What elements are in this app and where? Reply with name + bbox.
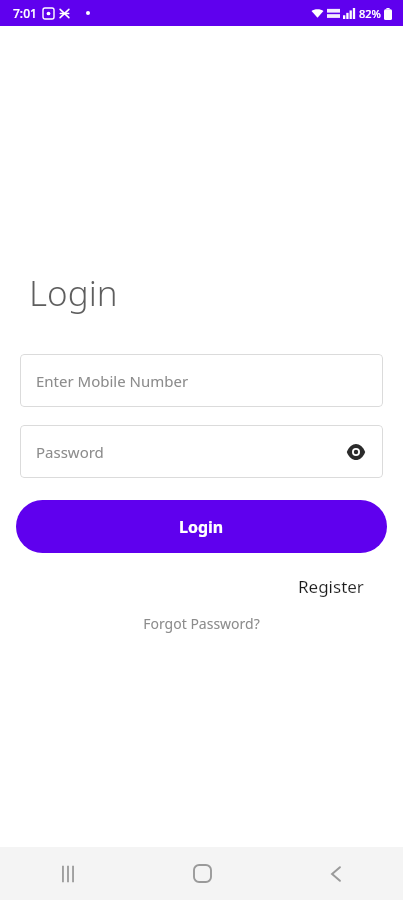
button[interactable]: Register: [295, 572, 367, 601]
button[interactable]: Login: [16, 500, 387, 553]
staticText: Forgot Password?: [143, 614, 260, 633]
staticText: Register: [298, 575, 364, 598]
button[interactable]: Recent apps: [0, 847, 135, 900]
button[interactable]: Back: [269, 847, 403, 900]
button[interactable]: Home: [135, 847, 269, 900]
button[interactable]: Show password: [343, 439, 369, 465]
button[interactable]: Forgot Password?: [137, 611, 266, 636]
staticText: Enter Mobile Number: [36, 371, 189, 391]
staticText: Password: [36, 442, 104, 462]
staticText: Login: [29, 269, 118, 317]
staticText: 82%: [359, 6, 381, 21]
staticText: 7:01: [13, 5, 37, 21]
button[interactable]: Password: [20, 425, 383, 478]
button[interactable]: Enter Mobile Number: [20, 354, 383, 407]
staticText: Login: [179, 516, 224, 538]
